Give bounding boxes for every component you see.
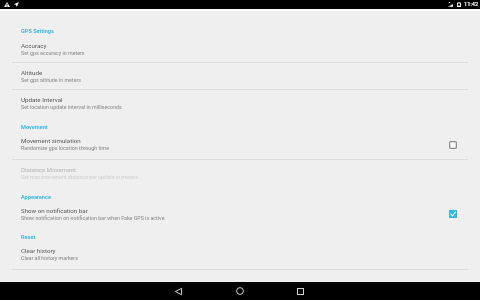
button[interactable]: Accuracy xyxy=(0,35,480,62)
staticText: Clear all history markers xyxy=(21,255,78,261)
button[interactable]: Altitude xyxy=(0,62,480,89)
button[interactable]: Show on notification bar, enabled xyxy=(447,208,458,219)
staticText: Accuracy xyxy=(21,42,47,49)
button[interactable]: Update Interval xyxy=(0,89,480,116)
button[interactable]: Show on notification bar xyxy=(0,200,480,228)
staticText: Set max movement distance per update in … xyxy=(21,174,138,180)
staticText: Show notification on notification bar wh… xyxy=(21,215,165,221)
staticText: Clear history xyxy=(21,247,56,254)
button[interactable]: Distance Movement xyxy=(0,159,480,187)
staticText: Show on notification bar xyxy=(21,207,88,214)
staticText: Set location update interval in millisec… xyxy=(21,104,122,110)
staticText: Movement xyxy=(21,124,48,131)
button[interactable]: Recent apps xyxy=(285,282,316,300)
staticText: Set gps accuracy in meters xyxy=(21,50,85,56)
staticText: Update Interval xyxy=(21,96,63,103)
button[interactable]: Back xyxy=(163,282,194,300)
button[interactable]: Home xyxy=(224,282,255,300)
staticText: Randomize gps location through time xyxy=(21,145,109,151)
staticText: Distance Movement xyxy=(21,166,76,173)
staticText: Movement simulation xyxy=(21,137,81,144)
button[interactable]: Clear history xyxy=(0,241,480,270)
button[interactable]: Movement simulation xyxy=(0,131,480,159)
staticText: Appearance xyxy=(21,194,51,201)
button[interactable]: Movement simulation, disabled xyxy=(447,139,458,150)
staticText: GPS Settings xyxy=(21,28,54,35)
staticText: Reset xyxy=(21,234,36,241)
staticText: Altitude xyxy=(21,69,43,76)
staticText: Set gps altitude in meters xyxy=(21,77,82,83)
staticText: 11:42 xyxy=(464,1,479,8)
